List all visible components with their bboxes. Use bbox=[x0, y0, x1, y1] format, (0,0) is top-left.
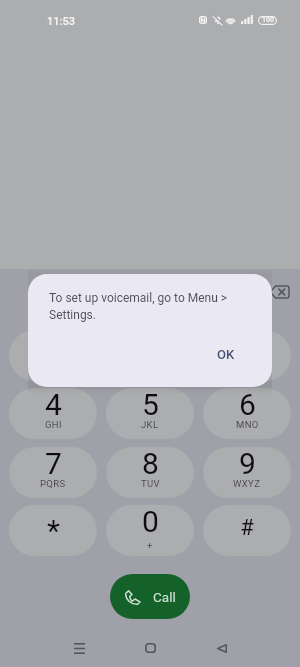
staticText: + bbox=[147, 540, 153, 551]
button[interactable]: Back bbox=[202, 632, 242, 664]
button[interactable]: OK bbox=[206, 339, 246, 369]
staticText: 100 bbox=[262, 16, 274, 24]
button[interactable]: 1 bbox=[9, 330, 97, 381]
staticText: Call bbox=[153, 589, 176, 605]
button[interactable]: 9 bbox=[203, 447, 291, 498]
staticText: TUV bbox=[141, 478, 160, 489]
staticText: 9 bbox=[239, 447, 256, 481]
staticText: PQRS bbox=[40, 478, 66, 489]
button[interactable]: 4 bbox=[9, 388, 97, 439]
staticText: GHI bbox=[45, 419, 62, 430]
button[interactable]: 0 bbox=[106, 505, 194, 556]
button[interactable]: 3 bbox=[203, 330, 291, 381]
button[interactable]: 8 bbox=[106, 447, 194, 498]
staticText: 4 bbox=[45, 388, 62, 422]
staticText: OK bbox=[217, 347, 235, 362]
staticText: 7 bbox=[45, 447, 62, 481]
staticText: WXYZ bbox=[233, 478, 261, 489]
button[interactable]: 5 bbox=[106, 388, 194, 439]
button[interactable]: 7 bbox=[9, 447, 97, 498]
button[interactable]: Home bbox=[130, 632, 170, 664]
button[interactable]: 6 bbox=[203, 388, 291, 439]
staticText: 6 bbox=[239, 388, 256, 422]
staticText: 8 bbox=[142, 447, 159, 481]
staticText: 0 bbox=[142, 505, 159, 539]
button[interactable]: Call bbox=[110, 574, 190, 619]
staticText: JKL bbox=[141, 419, 159, 430]
staticText: * bbox=[47, 513, 60, 548]
staticText: 11:53 bbox=[47, 15, 75, 28]
staticText: 5 bbox=[142, 388, 159, 422]
staticText: MNO bbox=[236, 419, 259, 430]
button[interactable]: # bbox=[203, 505, 291, 556]
button[interactable]: Recents bbox=[59, 632, 99, 664]
button[interactable]: * bbox=[9, 505, 97, 556]
staticText: # bbox=[240, 515, 254, 541]
button[interactable]: Delete bbox=[264, 282, 294, 302]
staticText: To set up voicemail, go to Menu > Settin… bbox=[49, 291, 234, 322]
